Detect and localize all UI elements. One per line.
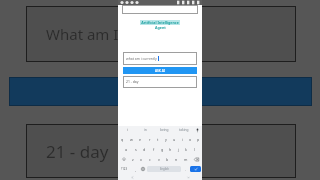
staticText: a [125, 147, 128, 152]
button[interactable]: taking [174, 126, 193, 134]
button[interactable]: k [182, 144, 190, 154]
button[interactable]: l [190, 144, 198, 154]
staticText: taking [179, 128, 189, 132]
staticText: d [143, 147, 146, 152]
staticText: English [160, 167, 169, 171]
button[interactable]: q [118, 134, 127, 144]
button[interactable]: d [140, 144, 149, 154]
button[interactable] [9, 77, 312, 106]
button[interactable]: v [154, 154, 163, 164]
staticText: n [175, 157, 178, 162]
staticText: in [144, 128, 147, 132]
button[interactable]: a [122, 144, 131, 154]
button[interactable]: s [131, 144, 140, 154]
button[interactable]: u [170, 134, 178, 144]
staticText: , [135, 167, 136, 172]
button[interactable]: h [166, 144, 174, 154]
staticText: What am I cur [46, 24, 145, 44]
button[interactable]: j [174, 144, 182, 154]
button[interactable]: y [162, 134, 170, 144]
staticText: h [169, 147, 172, 152]
staticText: p [197, 137, 200, 142]
staticText: j [178, 147, 179, 152]
staticText: m [184, 157, 188, 162]
button[interactable]: r [145, 134, 154, 144]
button[interactable]: 21 - day [26, 124, 296, 178]
staticText: g [161, 147, 164, 152]
staticText: k [185, 147, 187, 152]
staticText: being [160, 128, 169, 132]
staticText: 21 - day [126, 79, 139, 84]
staticText: z [132, 157, 134, 162]
staticText: f [153, 147, 155, 152]
staticText: v [158, 157, 160, 162]
button[interactable]: i [178, 134, 186, 144]
button[interactable]: Voice input [193, 126, 202, 134]
staticText: what am i currently [126, 56, 157, 61]
staticText: w [130, 137, 133, 142]
button[interactable]: i [118, 126, 136, 134]
button[interactable]: Backspace [190, 154, 202, 164]
button[interactable]: Back [118, 174, 146, 180]
staticText: r [149, 137, 151, 142]
staticText: 21 - day [46, 140, 109, 163]
staticText: Agent [155, 25, 166, 30]
button[interactable]: Enter [190, 166, 201, 172]
button[interactable]: o [186, 134, 194, 144]
staticText: q [121, 137, 124, 142]
staticText: l [194, 147, 195, 152]
button[interactable]: w [127, 134, 136, 144]
staticText: ?123 [121, 167, 128, 171]
staticText: i [127, 128, 128, 132]
button[interactable]: m [181, 154, 190, 164]
staticText: t [157, 137, 159, 142]
button[interactable]: , [131, 164, 139, 174]
button[interactable]: n [172, 154, 181, 164]
button[interactable]: Change keyboard language [139, 164, 147, 174]
button[interactable]: x [137, 154, 145, 164]
button[interactable]: Space [147, 166, 181, 172]
button[interactable]: z [129, 154, 137, 164]
button[interactable]: f [149, 144, 158, 154]
staticText: Artificial Intelligence [141, 20, 179, 25]
staticText: ASK AI [155, 69, 165, 73]
button[interactable]: being [155, 126, 174, 134]
staticText: b [166, 157, 169, 162]
staticText: o [189, 137, 192, 142]
button[interactable]: What am I cur [26, 6, 296, 62]
button[interactable] [122, 5, 198, 14]
button[interactable]: what am i currently [123, 52, 197, 65]
staticText: c [149, 157, 151, 162]
button[interactable]: ASK AI [123, 67, 197, 74]
staticText: . [185, 167, 186, 172]
button[interactable]: e [136, 134, 145, 144]
button[interactable]: b [163, 154, 172, 164]
staticText: s [135, 147, 137, 152]
staticText: e [139, 137, 142, 142]
button[interactable]: 21 - day [123, 76, 197, 88]
button[interactable]: in [136, 126, 155, 134]
button[interactable]: t [154, 134, 162, 144]
staticText: u [173, 137, 176, 142]
button[interactable]: p [194, 134, 202, 144]
button[interactable]: Hide keyboard [174, 174, 202, 180]
button[interactable]: g [158, 144, 166, 154]
button[interactable]: c [145, 154, 154, 164]
staticText: y [165, 137, 167, 142]
staticText: x [140, 157, 142, 162]
staticText: i [182, 137, 183, 142]
button[interactable]: ?123 [118, 164, 131, 174]
button[interactable]: Shift [118, 154, 129, 164]
